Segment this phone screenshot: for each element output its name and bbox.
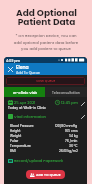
staticText: Height [10,129,21,133]
staticText: Add To Queue [16,70,40,75]
staticText: Weight [10,134,22,138]
staticText: Elena [16,64,29,70]
staticText: 4:09 pm [6,58,21,63]
staticText: BMI [10,149,16,153]
button[interactable]: Record/Upload Paperwork [8,158,87,163]
staticText: 54 kg [69,134,78,138]
staticText: 25 Apr 2021 [14,100,36,105]
staticText: Blood Pressure [10,124,34,128]
button[interactable]: In-Clinic Visit [4,87,45,97]
staticText: * On Reception Device, You can add optio… [12,33,80,51]
staticText: 26.61 kg/m2 [59,149,78,153]
staticText: 165 cms [65,129,78,133]
staticText: Vital Information [14,114,47,119]
staticText: Record/Upload Paperwork [14,158,64,163]
button[interactable]: Edit [79,100,86,107]
staticText: Temperature [10,144,31,148]
staticText: 36 °C [69,144,78,148]
button[interactable]: ADD TO QUEUE [26,170,65,179]
staticText: 76 /min [65,139,78,143]
staticText: ADD TO QUEUE [36,172,61,177]
button[interactable]: Teleconsultation [45,87,87,97]
button[interactable]: VIEW QUEUE [6,77,85,85]
staticText: Today at Walk-in Clinic [8,106,47,111]
staticText: 12:45 pm [61,100,78,105]
staticText: 120/80 mmHg [55,124,78,128]
button[interactable]: Edit [79,113,86,120]
staticText: Pulse [10,139,19,143]
button[interactable]: Close [4,63,16,75]
staticText: Teleconsultation [52,90,80,95]
staticText: Add Optional Patient Data [16,7,77,29]
staticText: VIEW QUEUE [36,79,56,83]
staticText: In-Clinic Visit [13,90,37,95]
